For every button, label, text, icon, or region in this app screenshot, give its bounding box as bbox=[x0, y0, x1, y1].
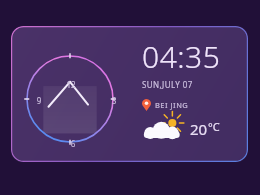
button[interactable]: Analog clock bbox=[11, 26, 248, 162]
staticText: 9 bbox=[33, 95, 45, 106]
button[interactable]: Analog clock bbox=[11, 26, 248, 162]
button[interactable]: Location bbox=[142, 99, 189, 111]
staticText: 3 bbox=[108, 95, 120, 106]
button[interactable]: 04:35 bbox=[142, 36, 221, 77]
staticText: °C bbox=[208, 119, 220, 134]
staticText: 6 bbox=[67, 138, 79, 149]
staticText: 20 bbox=[190, 119, 208, 139]
staticText: BEI JING bbox=[155, 100, 189, 110]
other: Location bbox=[142, 99, 151, 111]
other: Partly sunny weather bbox=[142, 114, 188, 144]
button[interactable]: Partly sunny weather bbox=[142, 114, 220, 144]
staticText: 12 bbox=[65, 79, 77, 90]
staticText: SUN,JULY 07 bbox=[142, 79, 193, 90]
